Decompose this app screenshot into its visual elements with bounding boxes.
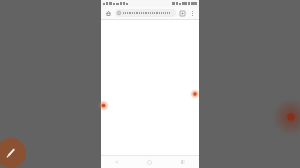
button[interactable]: Home bbox=[104, 9, 113, 18]
button[interactable] bbox=[115, 9, 176, 17]
button[interactable]: Recent apps bbox=[166, 156, 199, 168]
button[interactable]: Tabs bbox=[178, 9, 187, 18]
button[interactable]: Home bbox=[133, 156, 166, 168]
button[interactable]: More options bbox=[188, 9, 196, 17]
button[interactable]: Draw bbox=[0, 138, 26, 168]
